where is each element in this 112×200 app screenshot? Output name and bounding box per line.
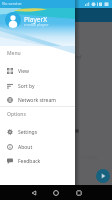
staticText: Menu <box>7 50 21 57</box>
staticText: Feedback <box>18 158 41 165</box>
button[interactable]: Back <box>28 185 40 200</box>
staticText: Settings <box>18 129 38 136</box>
button[interactable]: Profile <box>5 12 21 28</box>
button[interactable]: View <box>0 64 75 78</box>
staticText: Options <box>7 111 26 118</box>
staticText: media player <box>24 22 49 27</box>
staticText: About <box>18 144 33 151</box>
button[interactable]: Play <box>96 169 110 183</box>
button[interactable]: Feedback <box>0 154 75 168</box>
staticText: No service <box>2 1 22 6</box>
button[interactable]: Sort by <box>0 79 75 93</box>
staticText: PlayerX <box>24 15 48 24</box>
staticText: Sort by <box>18 83 35 90</box>
button[interactable]: Network stream <box>0 93 75 107</box>
staticText: hd <box>75 54 82 61</box>
button[interactable]: Home <box>50 185 62 200</box>
staticText: View <box>18 68 29 75</box>
button[interactable]: About <box>0 140 75 154</box>
button[interactable]: Recents <box>73 185 85 200</box>
staticText: 17 media <box>76 154 98 161</box>
button[interactable]: Settings <box>0 125 75 139</box>
staticText: Network stream <box>18 97 56 104</box>
